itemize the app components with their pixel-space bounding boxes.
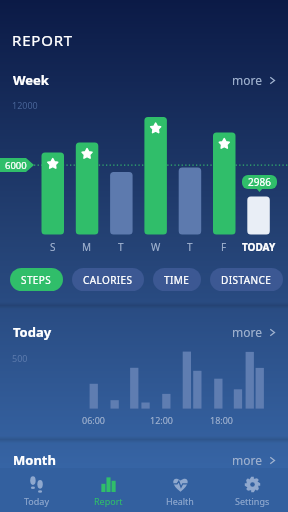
- staticText: T: [187, 240, 193, 254]
- staticText: 18:00: [210, 414, 234, 426]
- staticText: TODAY: [242, 240, 276, 254]
- staticText: Week: [13, 71, 49, 89]
- staticText: S: [50, 240, 56, 254]
- staticText: REPORT: [12, 30, 73, 50]
- button[interactable]: Report: [72, 468, 144, 512]
- staticText: Settings: [235, 495, 270, 507]
- staticText: 12000: [12, 99, 38, 111]
- button[interactable]: CALORIES: [72, 268, 144, 291]
- staticText: Health: [166, 495, 194, 507]
- button[interactable]: DISTANCE: [210, 268, 283, 291]
- staticText: F: [221, 240, 227, 254]
- staticText: CALORIES: [83, 273, 133, 287]
- staticText: more: [232, 72, 262, 88]
- staticText: TIME: [164, 273, 190, 287]
- button[interactable]: more: [232, 452, 277, 468]
- button[interactable]: TIME: [153, 268, 201, 291]
- button[interactable]: Today: [0, 468, 72, 512]
- staticText: 6000: [5, 159, 27, 172]
- button[interactable]: more: [232, 324, 277, 340]
- staticText: T: [118, 240, 124, 254]
- staticText: more: [232, 452, 262, 468]
- button[interactable]: Settings: [216, 468, 288, 512]
- staticText: 2986: [248, 175, 271, 189]
- staticText: DISTANCE: [221, 273, 272, 287]
- staticText: Report: [94, 495, 123, 507]
- staticText: Today: [24, 495, 49, 507]
- staticText: 500: [12, 352, 28, 364]
- button[interactable]: Health: [144, 468, 216, 512]
- staticText: W: [151, 240, 161, 254]
- staticText: 06:00: [82, 414, 106, 426]
- staticText: M: [82, 240, 92, 254]
- staticText: Month: [13, 451, 56, 469]
- staticText: Today: [13, 323, 52, 341]
- button[interactable]: more: [232, 72, 277, 88]
- staticText: more: [232, 324, 262, 340]
- staticText: STEPS: [21, 273, 52, 287]
- button[interactable]: STEPS: [10, 268, 63, 291]
- staticText: 12:00: [150, 414, 174, 426]
